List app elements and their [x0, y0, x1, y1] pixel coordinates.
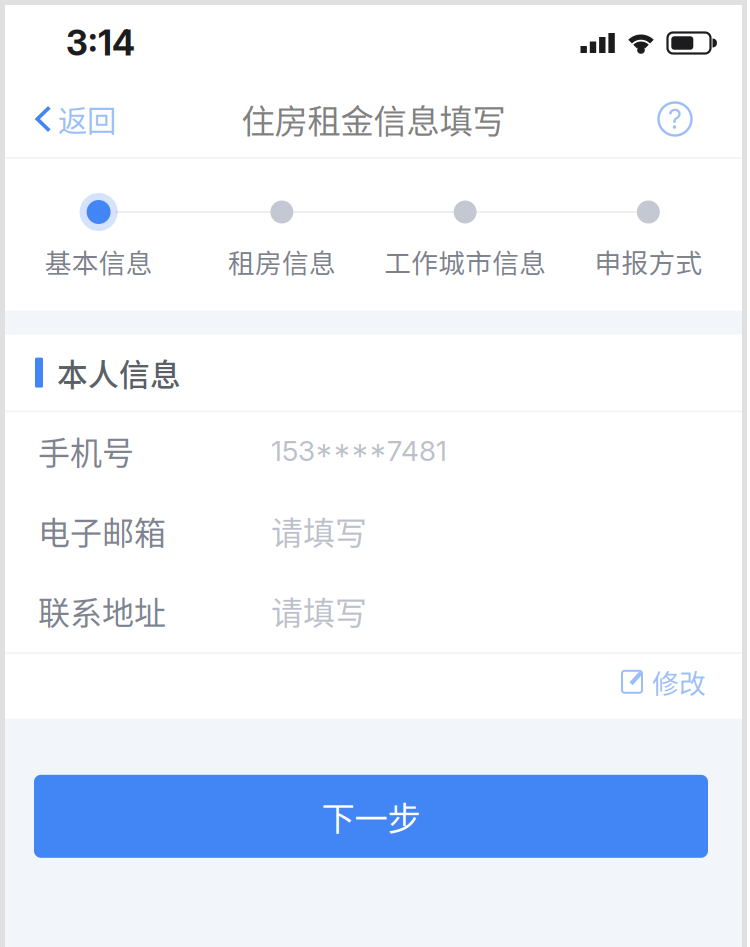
button[interactable]: 返回 [5, 81, 132, 157]
staticText: ? [668, 103, 682, 135]
staticText: 3:14 [66, 22, 135, 64]
staticText: 请填写 [271, 587, 367, 634]
staticText: 修改 [652, 662, 706, 701]
staticText: 返回 [58, 98, 116, 140]
button[interactable]: 下一步 [34, 775, 708, 858]
staticText: 153****7481 [271, 434, 447, 468]
staticText: 手机号 [38, 427, 134, 474]
button[interactable]: 电子邮箱 [5, 492, 742, 572]
button[interactable]: 修改 [606, 654, 742, 719]
staticText: 工作城市信息 [384, 242, 546, 281]
staticText: 基本信息 [45, 242, 153, 281]
staticText: 租房信息 [228, 242, 336, 281]
staticText: 住房租金信息填写 [241, 95, 505, 143]
staticText: 联系地址 [38, 587, 166, 634]
button[interactable]: 手机号 [5, 412, 742, 492]
button[interactable]: 联系地址 [5, 572, 742, 652]
button[interactable]: 帮助 [641, 81, 742, 157]
staticText: 请填写 [271, 507, 367, 554]
staticText: 本人信息 [57, 350, 181, 395]
staticText: 电子邮箱 [38, 507, 166, 554]
staticText: 申报方式 [594, 242, 702, 281]
staticText: 下一步 [321, 792, 420, 840]
